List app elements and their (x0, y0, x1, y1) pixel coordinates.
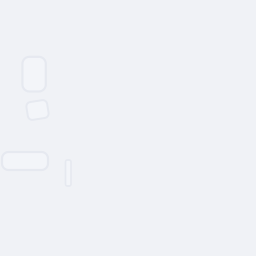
button[interactable]: Open (22, 57, 46, 91)
button[interactable]: More (65, 160, 71, 186)
button[interactable]: Details (27, 101, 48, 119)
button[interactable]: Continue (2, 152, 48, 170)
